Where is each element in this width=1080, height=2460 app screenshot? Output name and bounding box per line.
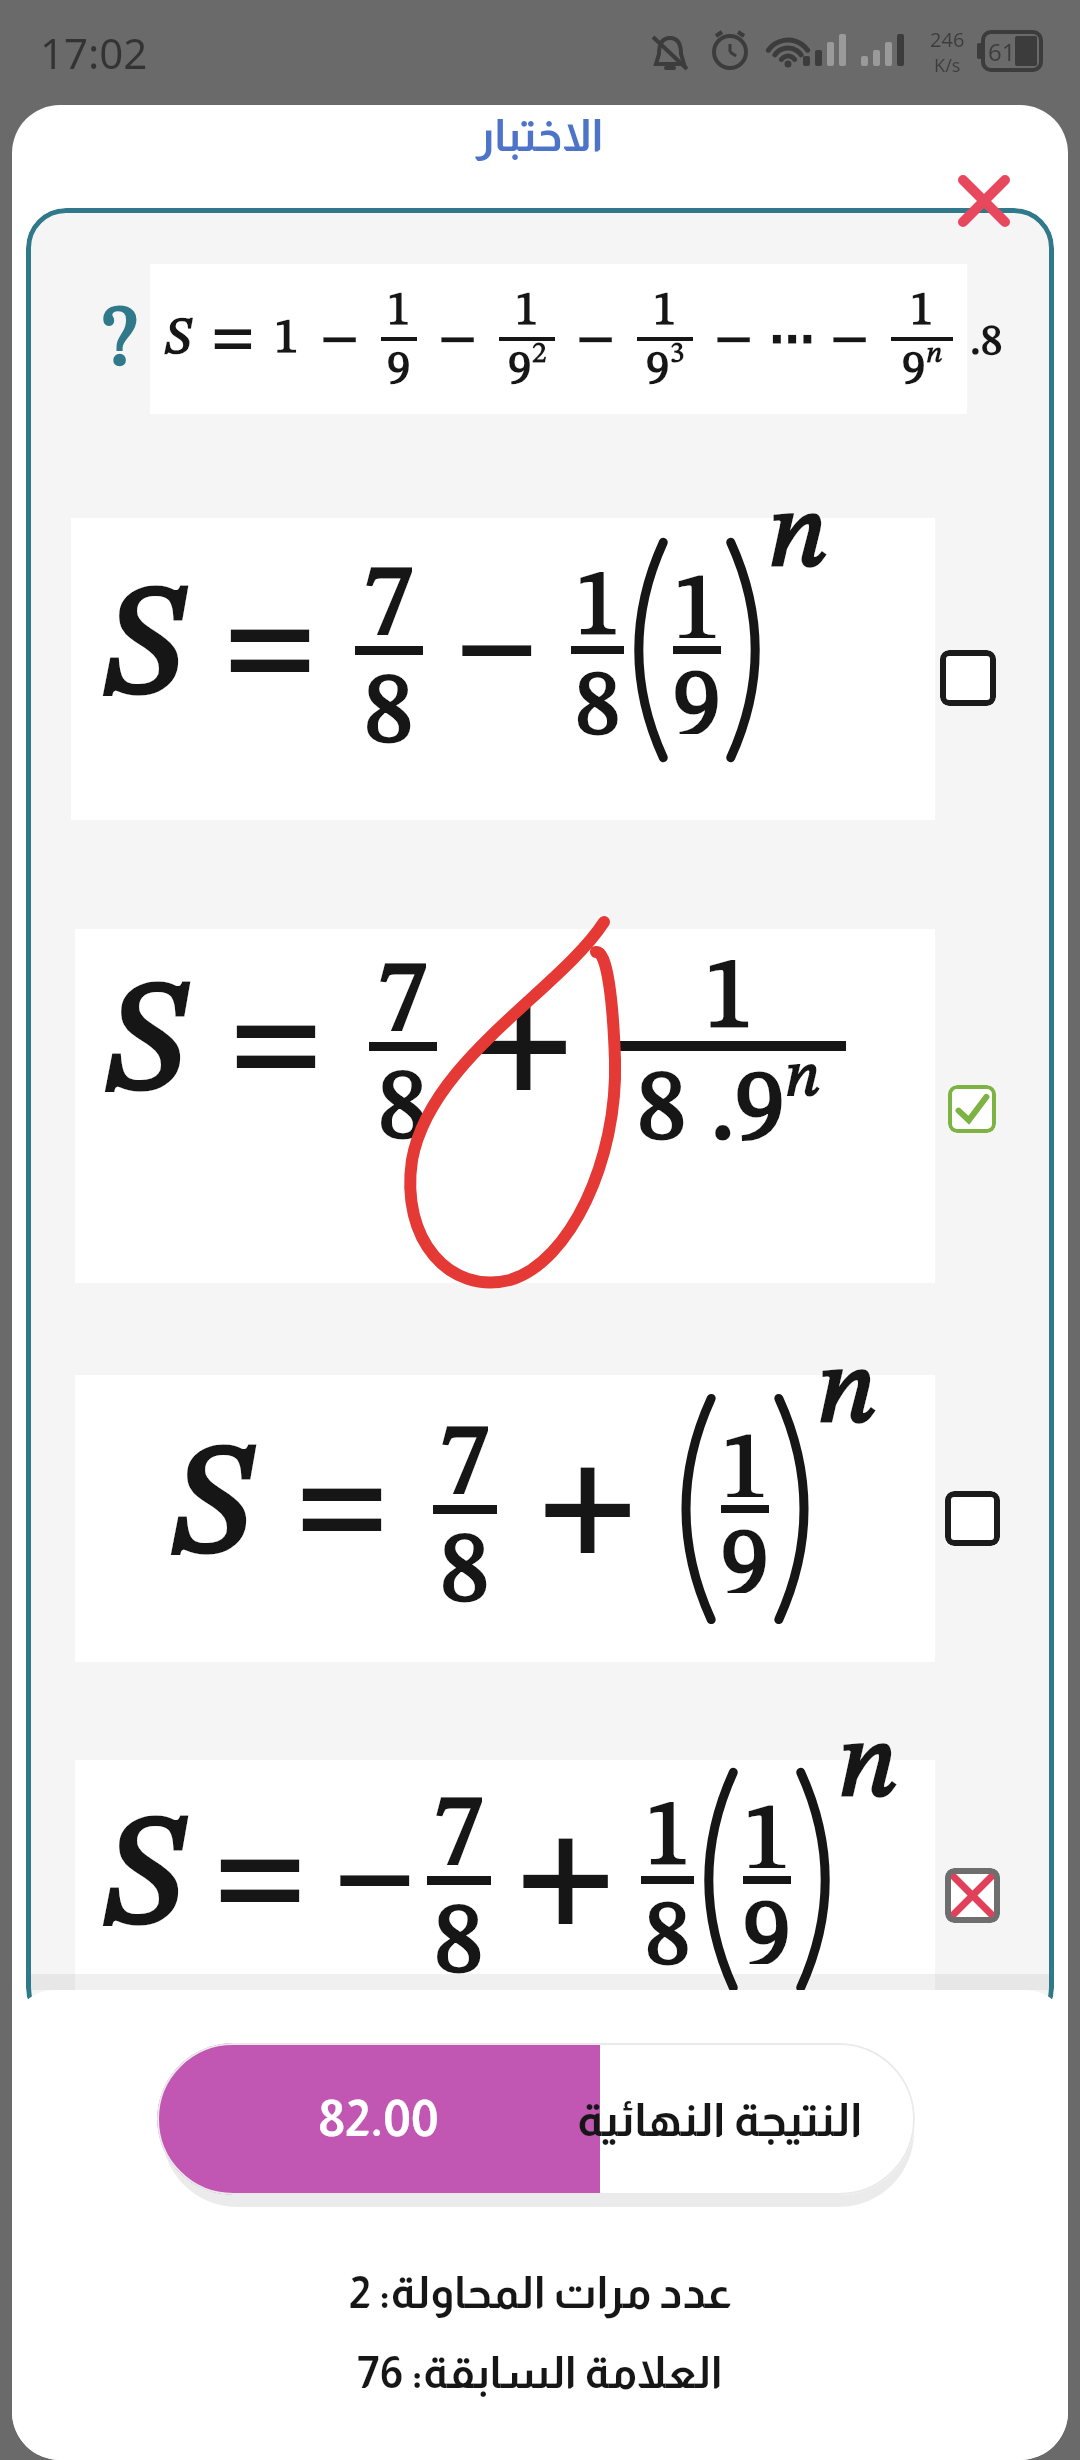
staticText: = <box>297 1447 387 1572</box>
staticText: − <box>715 313 753 365</box>
staticText: 9 <box>508 347 532 390</box>
staticText: 7 <box>364 556 414 636</box>
staticText: n <box>817 1341 877 1446</box>
staticText: 7 <box>440 1415 490 1495</box>
staticText: العلامة السابقة: 76 <box>357 2348 723 2397</box>
staticText: − <box>335 1825 415 1935</box>
staticText: S <box>102 573 185 728</box>
button[interactable] <box>948 1085 996 1133</box>
staticText: 61 <box>988 35 1016 68</box>
staticText: 246 <box>930 26 965 53</box>
staticText: − <box>831 313 869 365</box>
button[interactable]: الاختبار <box>476 111 604 160</box>
staticText: n <box>768 485 828 590</box>
staticText: 1 <box>721 1425 769 1497</box>
staticText: 1 <box>274 314 299 364</box>
staticText: 8 <box>378 1061 428 1141</box>
staticText: النتيجة النهائية <box>577 2094 863 2145</box>
staticText: .8 <box>970 320 1003 364</box>
button[interactable] <box>956 173 1011 228</box>
staticText: 9 <box>721 1521 769 1593</box>
staticText: 1 <box>645 1793 691 1867</box>
staticText: 1 <box>673 566 721 638</box>
staticText: n <box>785 1048 820 1110</box>
staticText: ? <box>102 298 138 384</box>
button[interactable] <box>945 1491 1000 1546</box>
staticText: + <box>517 1813 615 1948</box>
staticText: − <box>439 313 477 365</box>
staticText: S <box>104 969 187 1124</box>
staticText: 8 <box>645 1893 691 1967</box>
staticText: 1 <box>575 563 621 637</box>
staticText: 1 <box>387 288 411 331</box>
staticText: 1 <box>653 288 677 331</box>
staticText: − <box>321 313 359 365</box>
staticText: 1 <box>743 1796 791 1868</box>
button[interactable] <box>945 1868 1000 1923</box>
staticText: 7 <box>378 952 428 1032</box>
staticText: 9 <box>743 1892 791 1964</box>
button[interactable] <box>940 650 996 706</box>
staticText: الاختبار <box>476 111 604 160</box>
staticText: = <box>215 1818 305 1943</box>
button[interactable]: S <box>75 1375 935 1662</box>
staticText: 1 <box>515 288 539 331</box>
staticText: + <box>475 979 573 1114</box>
staticText: − <box>577 313 615 365</box>
button[interactable]: S <box>75 929 935 1283</box>
staticText: 9 <box>646 347 670 390</box>
staticText: 17:02 <box>40 24 148 80</box>
staticText: 9 <box>387 347 411 390</box>
staticText: = <box>212 310 254 368</box>
staticText: 8 <box>440 1524 490 1604</box>
staticText: n <box>838 1715 898 1820</box>
staticText: + <box>539 1442 637 1577</box>
staticText: 1 <box>704 950 754 1030</box>
staticText: . <box>687 1062 735 1142</box>
staticText: عدد مرات المحاولة: 2 <box>349 2268 732 2317</box>
staticText: = <box>231 984 321 1109</box>
staticText: S <box>164 313 192 365</box>
staticText: 7 <box>434 1786 484 1866</box>
staticText: S <box>102 1803 185 1958</box>
staticText: 2 <box>532 340 547 369</box>
staticText: 1 <box>910 288 934 331</box>
button[interactable]: 82.00 <box>157 2043 915 2195</box>
staticText: 9 <box>735 1062 785 1142</box>
staticText: 9 <box>902 347 926 390</box>
staticText: K/s <box>934 53 961 78</box>
staticText: − <box>457 595 537 705</box>
staticText: = <box>225 588 315 713</box>
staticText: 3 <box>670 340 685 369</box>
staticText: 8 <box>434 1895 484 1975</box>
staticText: 8 <box>575 663 621 737</box>
staticText: 8 <box>364 665 414 745</box>
button[interactable]: S <box>71 518 935 820</box>
staticText: 8 <box>637 1062 687 1142</box>
staticText: 9 <box>673 662 721 734</box>
button[interactable]: S <box>75 1760 935 2060</box>
staticText: n <box>926 340 943 369</box>
staticText: ⋯ <box>769 312 815 366</box>
staticText: S <box>170 1432 253 1587</box>
staticText: 82.00 <box>318 2091 439 2147</box>
